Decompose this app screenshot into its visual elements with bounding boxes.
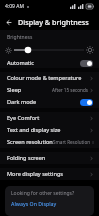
staticText: Colour mode & temperature bbox=[7, 74, 82, 82]
staticText: Dark mode bbox=[7, 98, 37, 106]
staticText: Text and display size bbox=[7, 126, 61, 134]
staticText: More display settings bbox=[7, 170, 64, 178]
staticText: Smart Resolution bbox=[53, 139, 91, 145]
staticText: Always On Display bbox=[11, 200, 57, 207]
staticText: Sleep bbox=[7, 86, 22, 94]
button[interactable]: Text and display size bbox=[0, 124, 99, 136]
staticText: After 15 seconds bbox=[52, 87, 88, 93]
button[interactable]: Screen resolution bbox=[0, 136, 99, 148]
button[interactable]: Dark mode bbox=[0, 96, 99, 108]
staticText: Eye Comfort bbox=[7, 114, 40, 122]
staticText: Display & brightness bbox=[18, 17, 89, 27]
staticText: 4:09 AM bbox=[5, 3, 24, 10]
button[interactable]: Always On Display bbox=[11, 200, 57, 207]
button[interactable]: Folding screen bbox=[0, 152, 99, 164]
staticText: Automatic bbox=[7, 59, 34, 67]
staticText: Screen resolution bbox=[7, 138, 53, 146]
staticText: Brightness bbox=[7, 34, 33, 41]
button[interactable]: Colour mode & temperature bbox=[0, 72, 99, 84]
button[interactable]: Back bbox=[0, 14, 16, 30]
staticText: Folding screen bbox=[7, 154, 46, 162]
staticText: Looking for other settings? bbox=[11, 190, 75, 197]
button[interactable]: More display settings bbox=[0, 168, 99, 180]
button[interactable]: Automatic bbox=[0, 58, 99, 68]
button[interactable]: Eye Comfort bbox=[0, 112, 99, 124]
button[interactable]: Sleep bbox=[0, 84, 99, 96]
